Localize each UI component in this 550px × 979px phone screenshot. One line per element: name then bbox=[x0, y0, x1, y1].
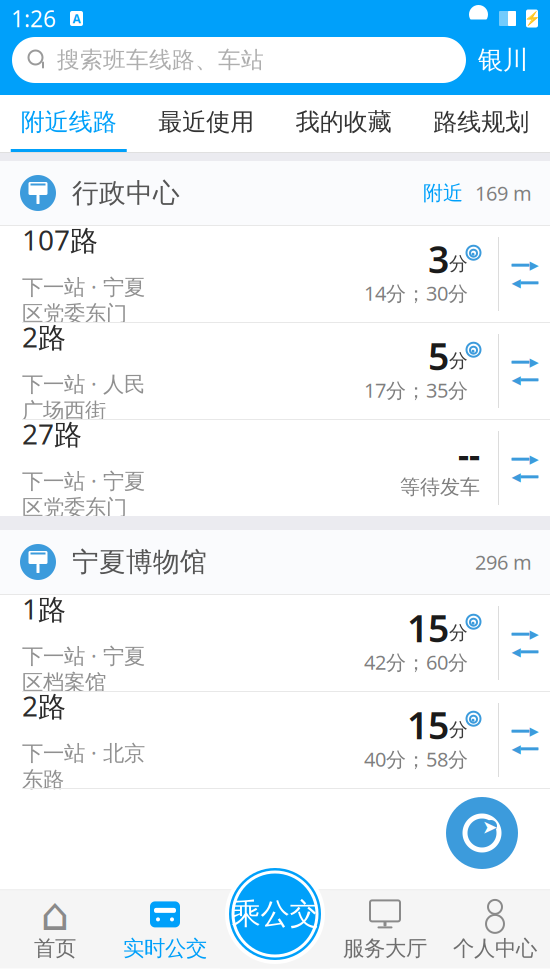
staticText: ▶ bbox=[529, 627, 538, 641]
staticText: 首页 bbox=[34, 935, 76, 962]
staticText: -- bbox=[458, 431, 480, 477]
button[interactable]: 宁夏博物馆 bbox=[0, 530, 550, 594]
button[interactable]: 2路 bbox=[0, 692, 550, 788]
button[interactable]: 2路 bbox=[0, 323, 550, 419]
staticText: 下一站 · 宁夏区党委东门 bbox=[22, 466, 145, 521]
staticText: ◀ bbox=[511, 373, 520, 387]
button[interactable]: 个人中心 bbox=[440, 890, 550, 968]
staticText: 296 m bbox=[475, 549, 532, 575]
staticText: 分 bbox=[449, 349, 468, 372]
staticText: ▶ bbox=[529, 355, 538, 369]
staticText: 15 bbox=[407, 700, 449, 749]
staticText: 乘公交 bbox=[231, 896, 318, 932]
staticText: 搜索班车线路、车站 bbox=[57, 46, 264, 74]
staticText: 1路 bbox=[22, 590, 66, 627]
staticText: 2路 bbox=[22, 687, 66, 724]
staticText: 等待发车 bbox=[400, 475, 480, 499]
staticText: 银川 bbox=[478, 44, 528, 75]
staticText: 14分；30分 bbox=[364, 280, 468, 306]
staticText: ◀ bbox=[511, 645, 520, 659]
button[interactable]: 银川 bbox=[466, 37, 540, 83]
staticText: 27路 bbox=[22, 415, 82, 452]
staticText: 我的收藏 bbox=[296, 107, 392, 137]
staticText: A bbox=[72, 10, 80, 26]
staticText: ➤ bbox=[482, 816, 498, 838]
staticText: 分 bbox=[449, 252, 468, 275]
staticText: 169 m bbox=[475, 180, 532, 206]
staticText: 42分；60分 bbox=[364, 649, 468, 675]
staticText: 下一站 · 北京东路 bbox=[22, 738, 145, 793]
staticText: ◀ bbox=[511, 470, 520, 484]
staticText: 分 bbox=[449, 621, 468, 644]
staticText: 下一站 · 人民广场西街 bbox=[22, 369, 145, 424]
staticText: 40分；58分 bbox=[364, 746, 468, 772]
staticText: 17分；35分 bbox=[364, 377, 468, 403]
staticText: 5 bbox=[428, 331, 449, 380]
staticText: ▶ bbox=[529, 452, 538, 466]
staticText: 分 bbox=[449, 718, 468, 741]
staticText: 2路 bbox=[22, 318, 66, 355]
button[interactable]: 实时公交 bbox=[110, 890, 220, 968]
staticText: 行政中心 bbox=[72, 177, 180, 209]
button[interactable]: 乘公交 bbox=[225, 864, 325, 964]
staticText: ▶ bbox=[529, 724, 538, 738]
button[interactable]: ⌂ bbox=[0, 890, 110, 968]
staticText: ◀ bbox=[511, 276, 520, 290]
button[interactable]: 107路 bbox=[0, 226, 550, 322]
staticText: 附近线路 bbox=[21, 107, 117, 137]
staticText: ◀ bbox=[511, 742, 520, 756]
button[interactable]: 27路 bbox=[0, 420, 550, 516]
staticText: 15 bbox=[407, 603, 449, 652]
staticText: 1:26 bbox=[11, 3, 56, 33]
staticText: 107路 bbox=[22, 221, 98, 258]
staticText: 宁夏博物馆 bbox=[72, 546, 207, 578]
staticText: 下一站 · 宁夏区档案馆 bbox=[22, 641, 145, 696]
staticText: ▶ bbox=[529, 258, 538, 272]
staticText: 服务大厅 bbox=[343, 935, 427, 962]
staticText: 实时公交 bbox=[123, 935, 207, 962]
button[interactable]: 1路 bbox=[0, 595, 550, 691]
button[interactable]: 我的收藏 bbox=[275, 95, 412, 152]
staticText: ⌂ bbox=[40, 889, 69, 940]
staticText: 附近 bbox=[423, 181, 463, 205]
button[interactable]: 搜索班车线路、车站 bbox=[12, 37, 466, 83]
staticText: 个人中心 bbox=[453, 935, 537, 962]
staticText: 下一站 · 宁夏区党委东门 bbox=[22, 272, 145, 327]
button[interactable]: 服务大厅 bbox=[330, 890, 440, 968]
button[interactable]: 刷新 bbox=[446, 797, 518, 869]
staticText: 路线规划 bbox=[433, 107, 529, 137]
button[interactable]: 路线规划 bbox=[412, 95, 550, 152]
button[interactable]: 最近使用 bbox=[137, 95, 275, 152]
staticText: ⚡ bbox=[523, 11, 540, 26]
staticText: 3 bbox=[428, 234, 449, 283]
staticText: 最近使用 bbox=[158, 107, 254, 137]
button[interactable]: 附近线路 bbox=[0, 95, 137, 152]
button[interactable]: 行政中心 bbox=[0, 161, 550, 225]
